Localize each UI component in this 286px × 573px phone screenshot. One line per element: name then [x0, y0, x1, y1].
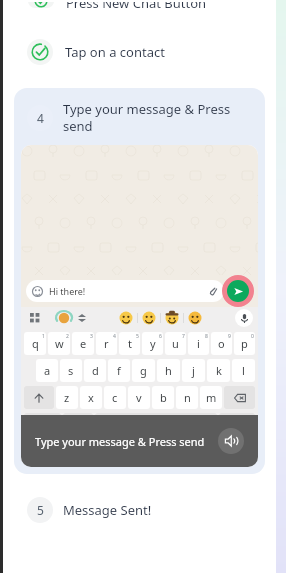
button[interactable]: y — [142, 332, 163, 355]
staticText: r — [104, 336, 109, 351]
button[interactable]: s — [60, 359, 82, 382]
button[interactable]: r — [96, 332, 117, 355]
button[interactable]: d — [84, 359, 106, 382]
staticText: Hi there! — [49, 285, 86, 297]
button[interactable]: u — [165, 332, 186, 355]
button[interactable]: o — [211, 332, 232, 355]
staticText: Type your message & Press send — [35, 434, 205, 449]
button[interactable]: a — [36, 359, 58, 382]
staticText: e — [80, 336, 87, 351]
button[interactable]: Type your message & Press send — [21, 415, 258, 467]
staticText: p — [241, 336, 248, 351]
button[interactable]: h — [157, 359, 180, 382]
button[interactable] — [219, 413, 255, 436]
button[interactable]: 4 — [14, 88, 265, 474]
staticText: c — [112, 390, 118, 405]
staticText: 7 — [182, 333, 185, 340]
button[interactable]: q — [24, 332, 46, 355]
staticText: u — [172, 336, 179, 351]
button[interactable]: p — [234, 332, 255, 355]
staticText: 4 — [37, 110, 44, 126]
button[interactable]: x — [80, 386, 102, 409]
button[interactable]: Play audio — [218, 428, 244, 454]
staticText: w — [55, 336, 64, 351]
staticText: 6 — [159, 333, 162, 340]
staticText: x — [88, 390, 94, 405]
staticText: o — [218, 336, 225, 351]
staticText: g — [140, 363, 147, 378]
button[interactable]: v — [128, 386, 150, 409]
button[interactable]: Voice input — [235, 309, 253, 327]
other: Shift — [34, 393, 44, 403]
button[interactable]: w — [48, 332, 70, 355]
button[interactable]: 5 — [14, 484, 265, 536]
staticText: Tap on a contact — [65, 43, 165, 61]
staticText: 5 — [136, 333, 139, 340]
button[interactable]: b — [152, 386, 174, 409]
staticText: n — [184, 390, 191, 405]
button[interactable]: Send — [227, 280, 249, 302]
button[interactable]: Hi there! — [26, 280, 224, 302]
staticText: t — [128, 336, 132, 351]
button[interactable]: k — [207, 359, 230, 382]
button[interactable] — [95, 413, 217, 436]
staticText: a — [44, 363, 51, 378]
button[interactable]: Shift — [24, 386, 54, 409]
staticText: l — [242, 363, 245, 378]
button[interactable]: f — [108, 359, 130, 382]
button[interactable]: Press New Chat Button — [14, 2, 265, 16]
staticText: Type your message & Press send — [63, 100, 252, 135]
button[interactable]: z — [56, 386, 78, 409]
button[interactable]: t — [119, 332, 140, 355]
staticText: d — [92, 363, 99, 378]
staticText: 0 — [251, 333, 254, 340]
staticText: h — [165, 363, 172, 378]
button[interactable]: g — [132, 359, 155, 382]
button[interactable]: c — [104, 386, 126, 409]
staticText: s — [68, 363, 74, 378]
staticText: y — [150, 336, 156, 351]
staticText: 9 — [228, 333, 231, 340]
staticText: b — [160, 390, 167, 405]
staticText: k — [216, 363, 222, 378]
staticText: f — [117, 363, 121, 378]
button[interactable]: Emoji categories — [26, 309, 44, 327]
staticText: v — [136, 390, 142, 405]
staticText: j — [192, 363, 195, 378]
staticText: 2 — [66, 333, 69, 340]
button[interactable]: e — [72, 332, 94, 355]
other: Attach — [208, 286, 218, 296]
button[interactable] — [63, 413, 93, 436]
staticText: Message Sent! — [63, 501, 152, 519]
button[interactable]: Tap on a contact — [14, 26, 265, 78]
staticText: 1 — [42, 333, 45, 340]
staticText: m — [206, 390, 217, 405]
staticText: 8 — [205, 333, 208, 340]
staticText: z — [64, 390, 70, 405]
button[interactable]: j — [182, 359, 205, 382]
button[interactable]: Backspace — [224, 386, 255, 409]
staticText: i — [197, 336, 200, 351]
other: Backspace — [234, 392, 246, 404]
staticText: q — [32, 336, 39, 351]
button[interactable]: i — [188, 332, 209, 355]
staticText: Press New Chat Button — [66, 2, 207, 8]
staticText: 5 — [37, 502, 44, 518]
button[interactable]: n — [176, 386, 198, 409]
button[interactable] — [24, 413, 61, 436]
button[interactable]: l — [232, 359, 255, 382]
staticText: 4 — [113, 333, 116, 340]
staticText: 3 — [90, 333, 93, 340]
button[interactable]: m — [200, 386, 222, 409]
